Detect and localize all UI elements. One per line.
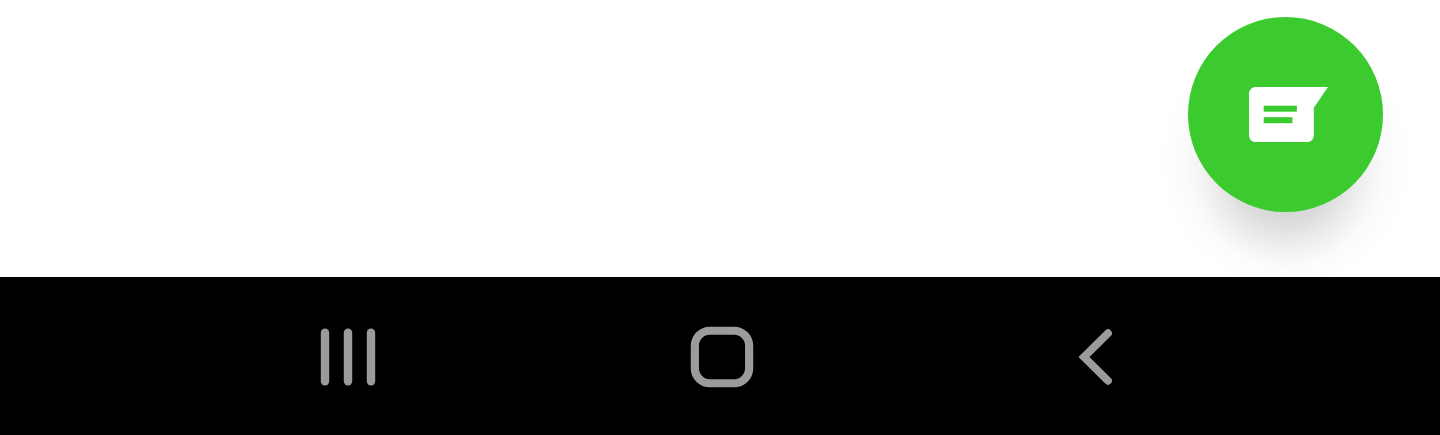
button[interactable]: Start chat bbox=[1188, 17, 1383, 212]
button[interactable]: Back bbox=[1021, 282, 1171, 432]
button[interactable]: Recents bbox=[273, 282, 423, 432]
button[interactable]: Home bbox=[647, 282, 797, 432]
